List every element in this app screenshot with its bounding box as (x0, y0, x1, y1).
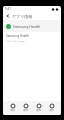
staticText: アプリ情報 (12, 14, 33, 19)
staticText: 項目 (36, 109, 41, 112)
staticText: バージョン 6.22 (6, 39, 25, 42)
button[interactable]: Samsung Health (6, 20, 58, 32)
button[interactable]: 項目 (9, 103, 16, 113)
staticText: Samsung Health (6, 34, 30, 38)
button[interactable]: 項目 (35, 103, 42, 113)
staticText: 項目 (10, 109, 15, 112)
staticText: 9:41 (5, 7, 11, 11)
staticText: Samsung Health (13, 24, 41, 29)
button[interactable]: 項目 (48, 103, 55, 113)
staticText: 項目 (49, 109, 54, 112)
staticText: 項目 (23, 109, 28, 112)
button[interactable]: 項目 (22, 103, 29, 113)
button[interactable]: Back (5, 13, 11, 19)
